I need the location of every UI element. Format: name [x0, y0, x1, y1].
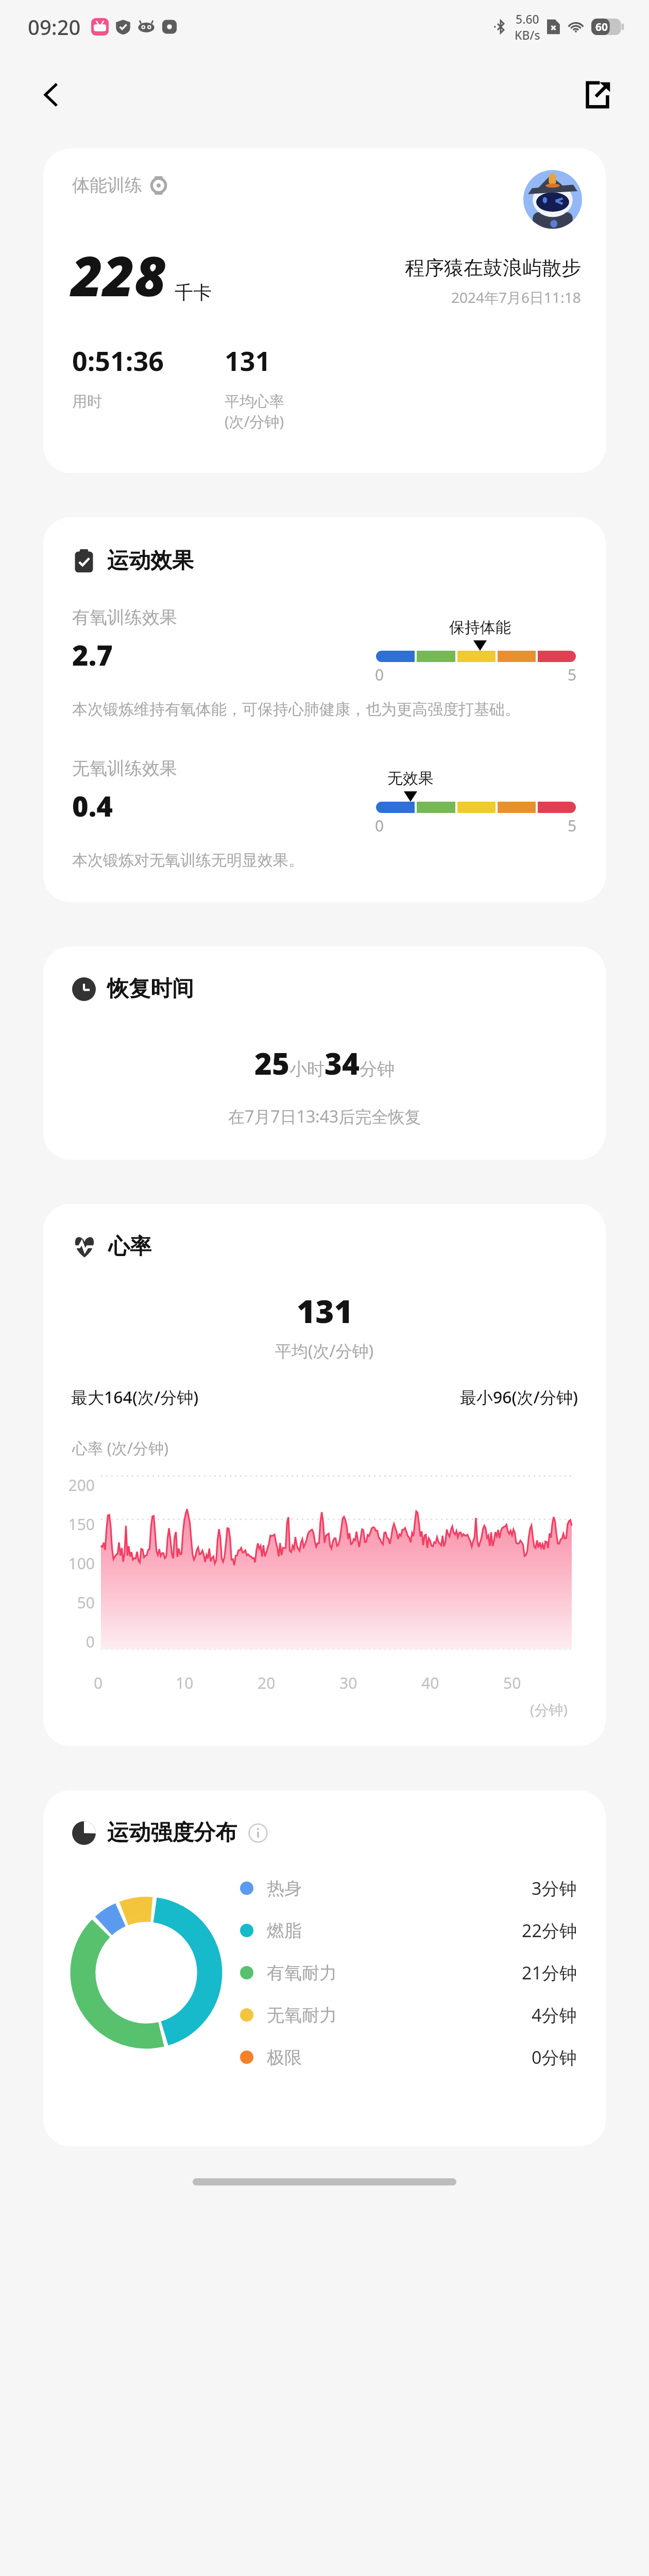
staticText: 0.4 — [72, 787, 113, 825]
staticText: 0 — [61, 1631, 95, 1652]
staticText: 有氧训练效果 — [72, 606, 177, 629]
staticText: 25 — [254, 1043, 289, 1083]
staticText: 0 — [94, 1672, 103, 1693]
staticText: 0 — [375, 815, 384, 836]
button[interactable]: Share — [572, 69, 623, 121]
staticText: 热身 — [267, 1877, 302, 1900]
staticText: 200 — [61, 1475, 95, 1496]
staticText: 5 — [568, 664, 577, 685]
staticText: 保持体能 — [449, 618, 511, 637]
staticText: 在7月7日13:43后完全恢复 — [228, 1105, 421, 1128]
staticText: 50 — [61, 1592, 95, 1613]
staticText: 4分钟 — [532, 2003, 577, 2027]
staticText: 10 — [176, 1672, 194, 1693]
staticText: 40 — [421, 1672, 439, 1693]
staticText: 100 — [61, 1553, 95, 1574]
staticText: 34 — [324, 1043, 360, 1083]
staticText: KB/s — [515, 27, 540, 43]
staticText: 无氧耐力 — [267, 2004, 337, 2026]
staticText: 平均心率 — [225, 392, 284, 411]
staticText: 用时 — [72, 392, 102, 411]
staticText: 运动强度分布 — [107, 1819, 237, 1846]
staticText: 有氧耐力 — [267, 1962, 337, 1984]
staticText: 心率 (次/分钟) — [72, 1437, 168, 1459]
button[interactable]: Info — [246, 1821, 270, 1845]
staticText: 千卡 — [175, 281, 212, 304]
staticText: 本次锻炼对无氧训练无明显效果。 — [72, 851, 304, 870]
staticText: 分钟 — [360, 1058, 395, 1080]
staticText: (分钟) — [530, 1700, 568, 1719]
staticText: 体能训练 — [72, 174, 142, 196]
staticText: 50 — [503, 1672, 521, 1693]
staticText: 22分钟 — [522, 1919, 577, 1942]
button[interactable]: Back — [26, 69, 77, 121]
staticText: 09:20 — [28, 13, 81, 41]
staticText: 150 — [61, 1514, 95, 1535]
staticText: 小时 — [289, 1058, 324, 1080]
staticText: 20 — [258, 1672, 276, 1693]
staticText: 程序猿在鼓浪屿散步 — [405, 256, 581, 280]
staticText: 228 — [71, 238, 166, 312]
staticText: 最小96(次/分钟) — [460, 1386, 578, 1409]
staticText: 2024年7月6日11:18 — [451, 287, 581, 307]
staticText: 131 — [225, 342, 271, 379]
staticText: 燃脂 — [267, 1920, 302, 1942]
staticText: 131 — [297, 1289, 353, 1332]
staticText: 30 — [339, 1672, 357, 1693]
staticText: 本次锻炼维持有氧体能，可保持心肺健康，也为更高强度打基础。 — [72, 700, 520, 719]
staticText: 0:51:36 — [72, 342, 164, 379]
staticText: 5 — [568, 815, 577, 836]
staticText: 无效果 — [387, 769, 434, 788]
staticText: 平均(次/分钟) — [275, 1340, 374, 1362]
staticText: 无氧训练效果 — [72, 757, 177, 779]
staticText: 5.60 — [516, 11, 539, 27]
staticText: 运动效果 — [107, 547, 194, 574]
staticText: 60 — [595, 20, 608, 35]
staticText: 3分钟 — [532, 1876, 577, 1900]
staticText: 21分钟 — [522, 1961, 577, 1985]
staticText: 2.7 — [72, 636, 113, 674]
staticText: (次/分钟) — [225, 411, 284, 432]
staticText: 最大164(次/分钟) — [71, 1386, 199, 1409]
staticText: 心率 — [108, 1233, 151, 1260]
staticText: 恢复时间 — [107, 975, 194, 1003]
staticText: 0 — [375, 664, 384, 685]
staticText: 极限 — [267, 2046, 302, 2069]
staticText: 0分钟 — [532, 2045, 577, 2069]
